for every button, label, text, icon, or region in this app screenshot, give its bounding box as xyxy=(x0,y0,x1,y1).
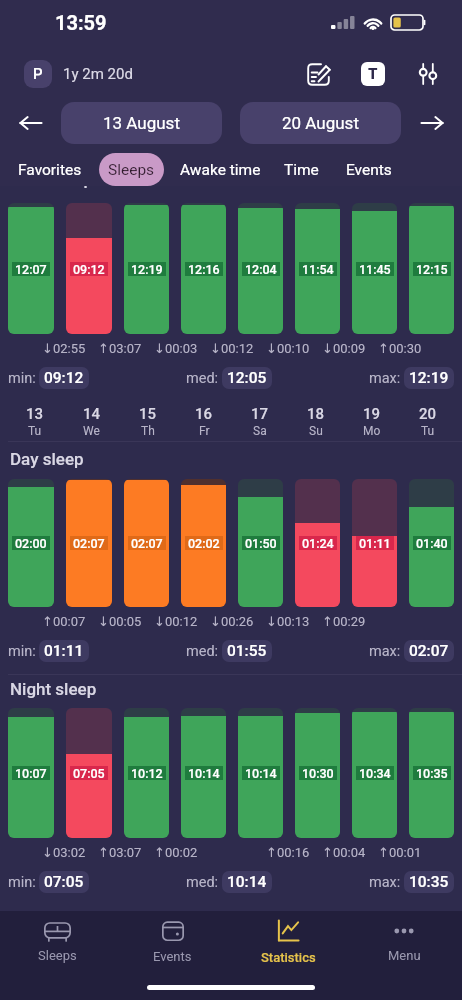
staticText: ↑00:02 xyxy=(154,845,198,860)
staticText: Menu xyxy=(388,948,421,963)
button[interactable]: Favorites xyxy=(18,153,82,186)
staticText: 10:12 xyxy=(131,766,163,780)
staticText: ↓00:12 xyxy=(210,341,254,356)
staticText: 13 August xyxy=(103,113,180,133)
staticText: ↓00:05 xyxy=(98,614,142,629)
button[interactable]: Events xyxy=(346,153,392,186)
staticText: Su xyxy=(309,424,323,438)
staticText: ↓00:13 xyxy=(266,614,310,629)
staticText: 09:12 xyxy=(44,369,84,387)
staticText: 13:59 xyxy=(55,11,107,34)
staticText: max: xyxy=(369,370,401,387)
staticText: T xyxy=(368,65,378,83)
staticText: We xyxy=(83,424,100,438)
staticText: Total sleep time xyxy=(10,186,132,189)
staticText: 12:04 xyxy=(245,262,277,276)
staticText: 12:19 xyxy=(409,369,449,387)
staticText: 02:02 xyxy=(188,536,220,550)
button[interactable]: P xyxy=(24,60,52,88)
button[interactable]: Notes xyxy=(295,51,341,97)
button[interactable]: Next week xyxy=(401,102,462,144)
staticText: 10:07 xyxy=(15,766,47,780)
staticText: max: xyxy=(369,874,401,891)
staticText: Sleeps xyxy=(38,948,77,963)
staticText: 19 xyxy=(363,405,381,423)
button[interactable]: Sleeps xyxy=(99,153,164,186)
staticText: ↑00:07 xyxy=(42,614,86,629)
staticText: 10:14 xyxy=(245,766,277,780)
staticText: min: xyxy=(8,370,36,387)
staticText: Awake time xyxy=(180,161,261,179)
staticText: max: xyxy=(369,643,401,660)
staticText: 15 xyxy=(139,405,157,423)
button[interactable]: Menu xyxy=(346,911,462,973)
staticText: 10:14 xyxy=(188,766,220,780)
staticText: Favorites xyxy=(18,161,82,179)
staticText: 20 xyxy=(419,405,437,423)
staticText: ↓00:26 xyxy=(210,614,254,629)
staticText: ↑00:30 xyxy=(378,341,422,356)
button[interactable]: Sleeps xyxy=(0,911,115,973)
staticText: ↓00:09 xyxy=(322,341,366,356)
staticText: 1y 2m 20d xyxy=(63,65,133,83)
button[interactable]: Text notes xyxy=(350,51,396,97)
staticText: 09:12 xyxy=(73,262,105,276)
staticText: Th xyxy=(141,424,155,438)
staticText: ↑03:07 xyxy=(98,845,142,860)
staticText: ↓03:02 xyxy=(42,845,86,860)
staticText: ↓00:03 xyxy=(154,341,198,356)
staticText: 01:40 xyxy=(416,536,448,550)
staticText: 10:35 xyxy=(409,873,449,891)
staticText: ↓00:12 xyxy=(154,614,198,629)
staticText: ↑00:04 xyxy=(322,845,366,860)
staticText: Fr xyxy=(199,424,210,438)
staticText: ↑00:01 xyxy=(378,845,422,860)
staticText: 12:07 xyxy=(15,262,47,276)
staticText: 12:16 xyxy=(188,262,220,276)
staticText: 07:05 xyxy=(73,766,105,780)
staticText: ↑03:07 xyxy=(98,341,142,356)
staticText: 10:35 xyxy=(416,766,448,780)
button[interactable]: Statistics xyxy=(230,911,346,973)
staticText: Events xyxy=(153,949,192,964)
staticText: 02:07 xyxy=(131,536,163,550)
staticText: 02:07 xyxy=(73,536,105,550)
staticText: 10:30 xyxy=(302,766,334,780)
staticText: Mo xyxy=(363,424,381,438)
button[interactable]: Time xyxy=(284,153,319,186)
staticText: Day sleep xyxy=(10,449,84,469)
staticText: Sa xyxy=(253,424,267,438)
staticText: 20 August xyxy=(282,113,359,133)
staticText: Time xyxy=(284,161,319,179)
staticText: 12:05 xyxy=(227,369,267,387)
staticText: 01:11 xyxy=(44,642,84,660)
staticText: min: xyxy=(8,874,36,891)
button[interactable]: Awake time xyxy=(180,153,261,186)
staticText: Tu xyxy=(421,424,435,438)
staticText: ↓00:10 xyxy=(266,341,310,356)
button[interactable]: Filter xyxy=(405,51,451,97)
staticText: 01:50 xyxy=(245,536,277,550)
staticText: min: xyxy=(8,643,36,660)
staticText: Events xyxy=(346,161,392,179)
staticText: med: xyxy=(186,370,219,387)
button[interactable]: Previous week xyxy=(0,102,61,144)
staticText: ↑00:16 xyxy=(266,845,310,860)
button[interactable]: 13 August xyxy=(61,102,222,144)
staticText: 01:11 xyxy=(359,536,391,550)
staticText: ↑00:29 xyxy=(322,614,366,629)
staticText: 11:45 xyxy=(359,262,391,276)
staticText: 14 xyxy=(83,405,101,423)
staticText: Sleeps xyxy=(108,161,155,179)
staticText: ↓02:55 xyxy=(42,341,86,356)
button[interactable]: 20 August xyxy=(240,102,401,144)
staticText: 10:34 xyxy=(359,766,391,780)
staticText: med: xyxy=(186,874,219,891)
button[interactable]: Events xyxy=(115,911,230,973)
staticText: 12:15 xyxy=(416,262,448,276)
staticText: 11:54 xyxy=(302,262,334,276)
staticText: 01:55 xyxy=(227,642,267,660)
staticText: 07:05 xyxy=(44,873,84,891)
staticText: Tu xyxy=(28,424,42,438)
staticText: 01:24 xyxy=(302,536,334,550)
